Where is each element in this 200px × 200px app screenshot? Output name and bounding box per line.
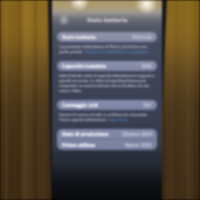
- staticText: comportare un numero inferiore di ore di…: [59, 83, 150, 88]
- button[interactable]: Scopri di più.: [108, 117, 129, 122]
- staticText: Stato batteria: [62, 34, 96, 41]
- staticText: Primo utilizzo: [62, 142, 96, 149]
- button[interactable]: Primo utilizzo: [57, 140, 157, 150]
- button[interactable]: Conteggio cicli: [57, 100, 157, 110]
- button[interactable]: Capacità massima: [57, 61, 157, 71]
- staticText: Questo è il numero di volte in cui iPhon…: [59, 112, 147, 117]
- button[interactable]: Informazioni sulla batteria e prestazion…: [85, 49, 150, 54]
- staticText: quella prevista.: [59, 49, 85, 54]
- staticText: quando era nuova: un valore di capacità …: [59, 78, 146, 83]
- staticText: carica e l'altra.: [59, 88, 82, 93]
- staticText: l'intera capacità della batteria.: [59, 117, 108, 122]
- staticText: Conteggio cicli: [62, 102, 98, 109]
- staticText: Capacità massima: [62, 63, 107, 70]
- staticText: Stato batteria: [87, 16, 128, 24]
- staticText: 18:55: [62, 3, 75, 10]
- button[interactable]: Back: [59, 15, 69, 25]
- staticText: 45: [141, 4, 147, 10]
- staticText: 82%: [142, 63, 152, 70]
- staticText: Ottobre 2024: [122, 131, 152, 138]
- button[interactable]: Data di produzione: [57, 129, 157, 139]
- staticText: Indica l'attuale valore di capacità dell…: [59, 73, 155, 78]
- button[interactable]: Stato batteria: [57, 32, 157, 42]
- staticText: 343: [143, 102, 152, 109]
- staticText: Normale: [132, 34, 152, 41]
- staticText: Marzo 2025: [125, 142, 152, 149]
- staticText: La prestazione della batteria di iPhone …: [59, 44, 147, 49]
- staticText: Data di produzione: [62, 131, 109, 138]
